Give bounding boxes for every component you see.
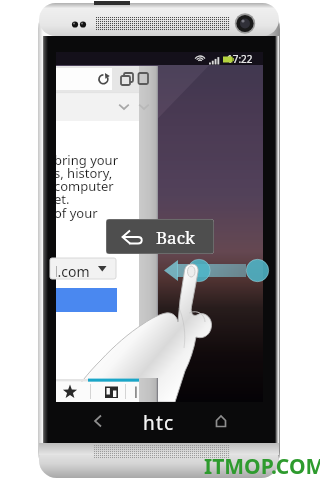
staticText: bring your s, history, computer et. (56, 151, 119, 208)
staticText: ITMOP.COM (204, 452, 320, 481)
staticText: 17:22 (227, 52, 253, 66)
button[interactable]: Back (90, 409, 110, 434)
staticText: Back (156, 226, 195, 249)
staticText: l.com (56, 262, 90, 281)
button[interactable]: Back (106, 219, 214, 254)
staticText: htc (143, 410, 175, 434)
button[interactable]: Home (211, 409, 231, 434)
staticText: of your (56, 204, 98, 222)
